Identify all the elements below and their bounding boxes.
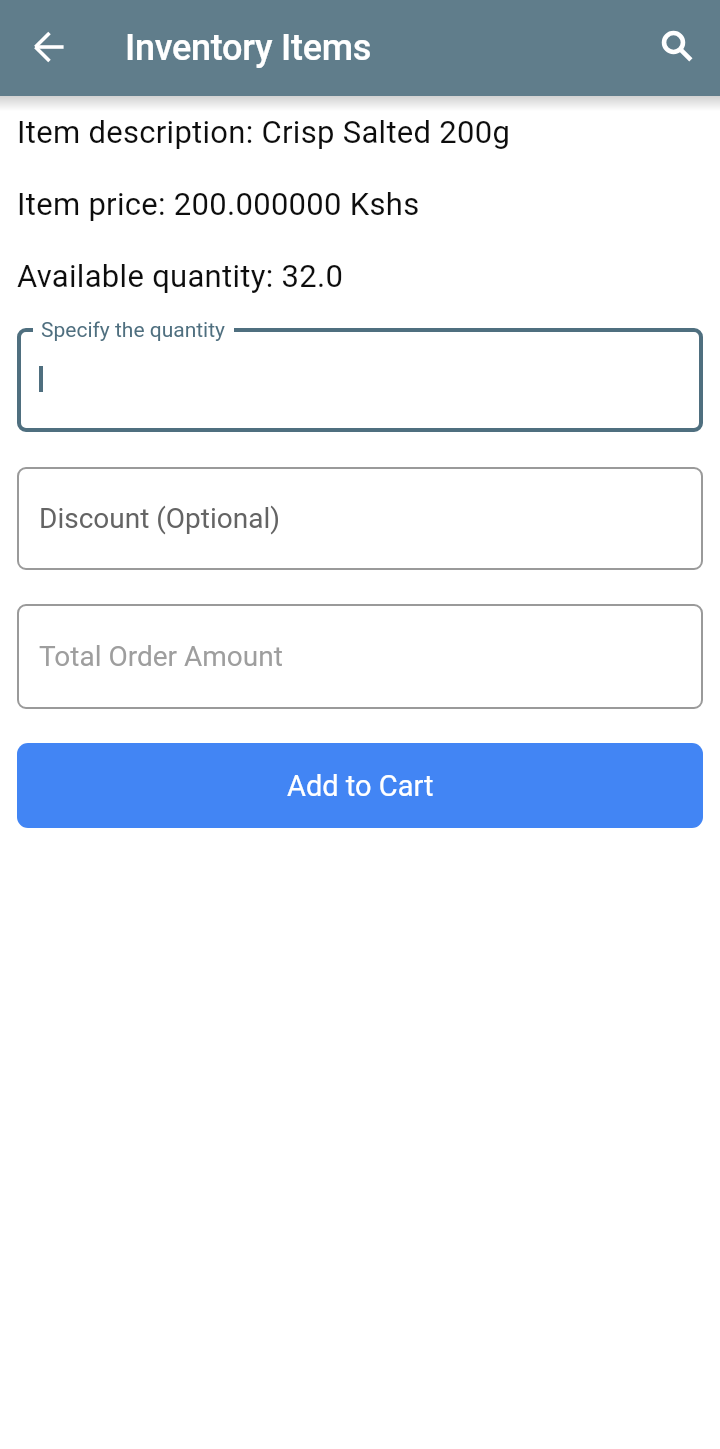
staticText: Inventory Items: [125, 27, 372, 69]
staticText: Add to Cart: [287, 769, 434, 803]
staticText: Available quantity: 32.0: [17, 258, 344, 294]
staticText: Item price: 200.000000 Kshs: [17, 186, 420, 222]
button[interactable]: Search: [624, 0, 720, 96]
button[interactable]: [17, 328, 703, 432]
staticText: Discount (Optional): [39, 502, 281, 535]
button[interactable]: Add to Cart: [17, 743, 703, 828]
staticText: Item description: Crisp Salted 200g: [17, 114, 511, 150]
button[interactable]: Navigate up: [0, 0, 96, 96]
staticText: Specify the quantity: [41, 318, 226, 343]
button[interactable]: Total Order Amount: [17, 604, 703, 709]
staticText: Total Order Amount: [39, 640, 283, 673]
button[interactable]: Discount (Optional): [17, 467, 703, 570]
